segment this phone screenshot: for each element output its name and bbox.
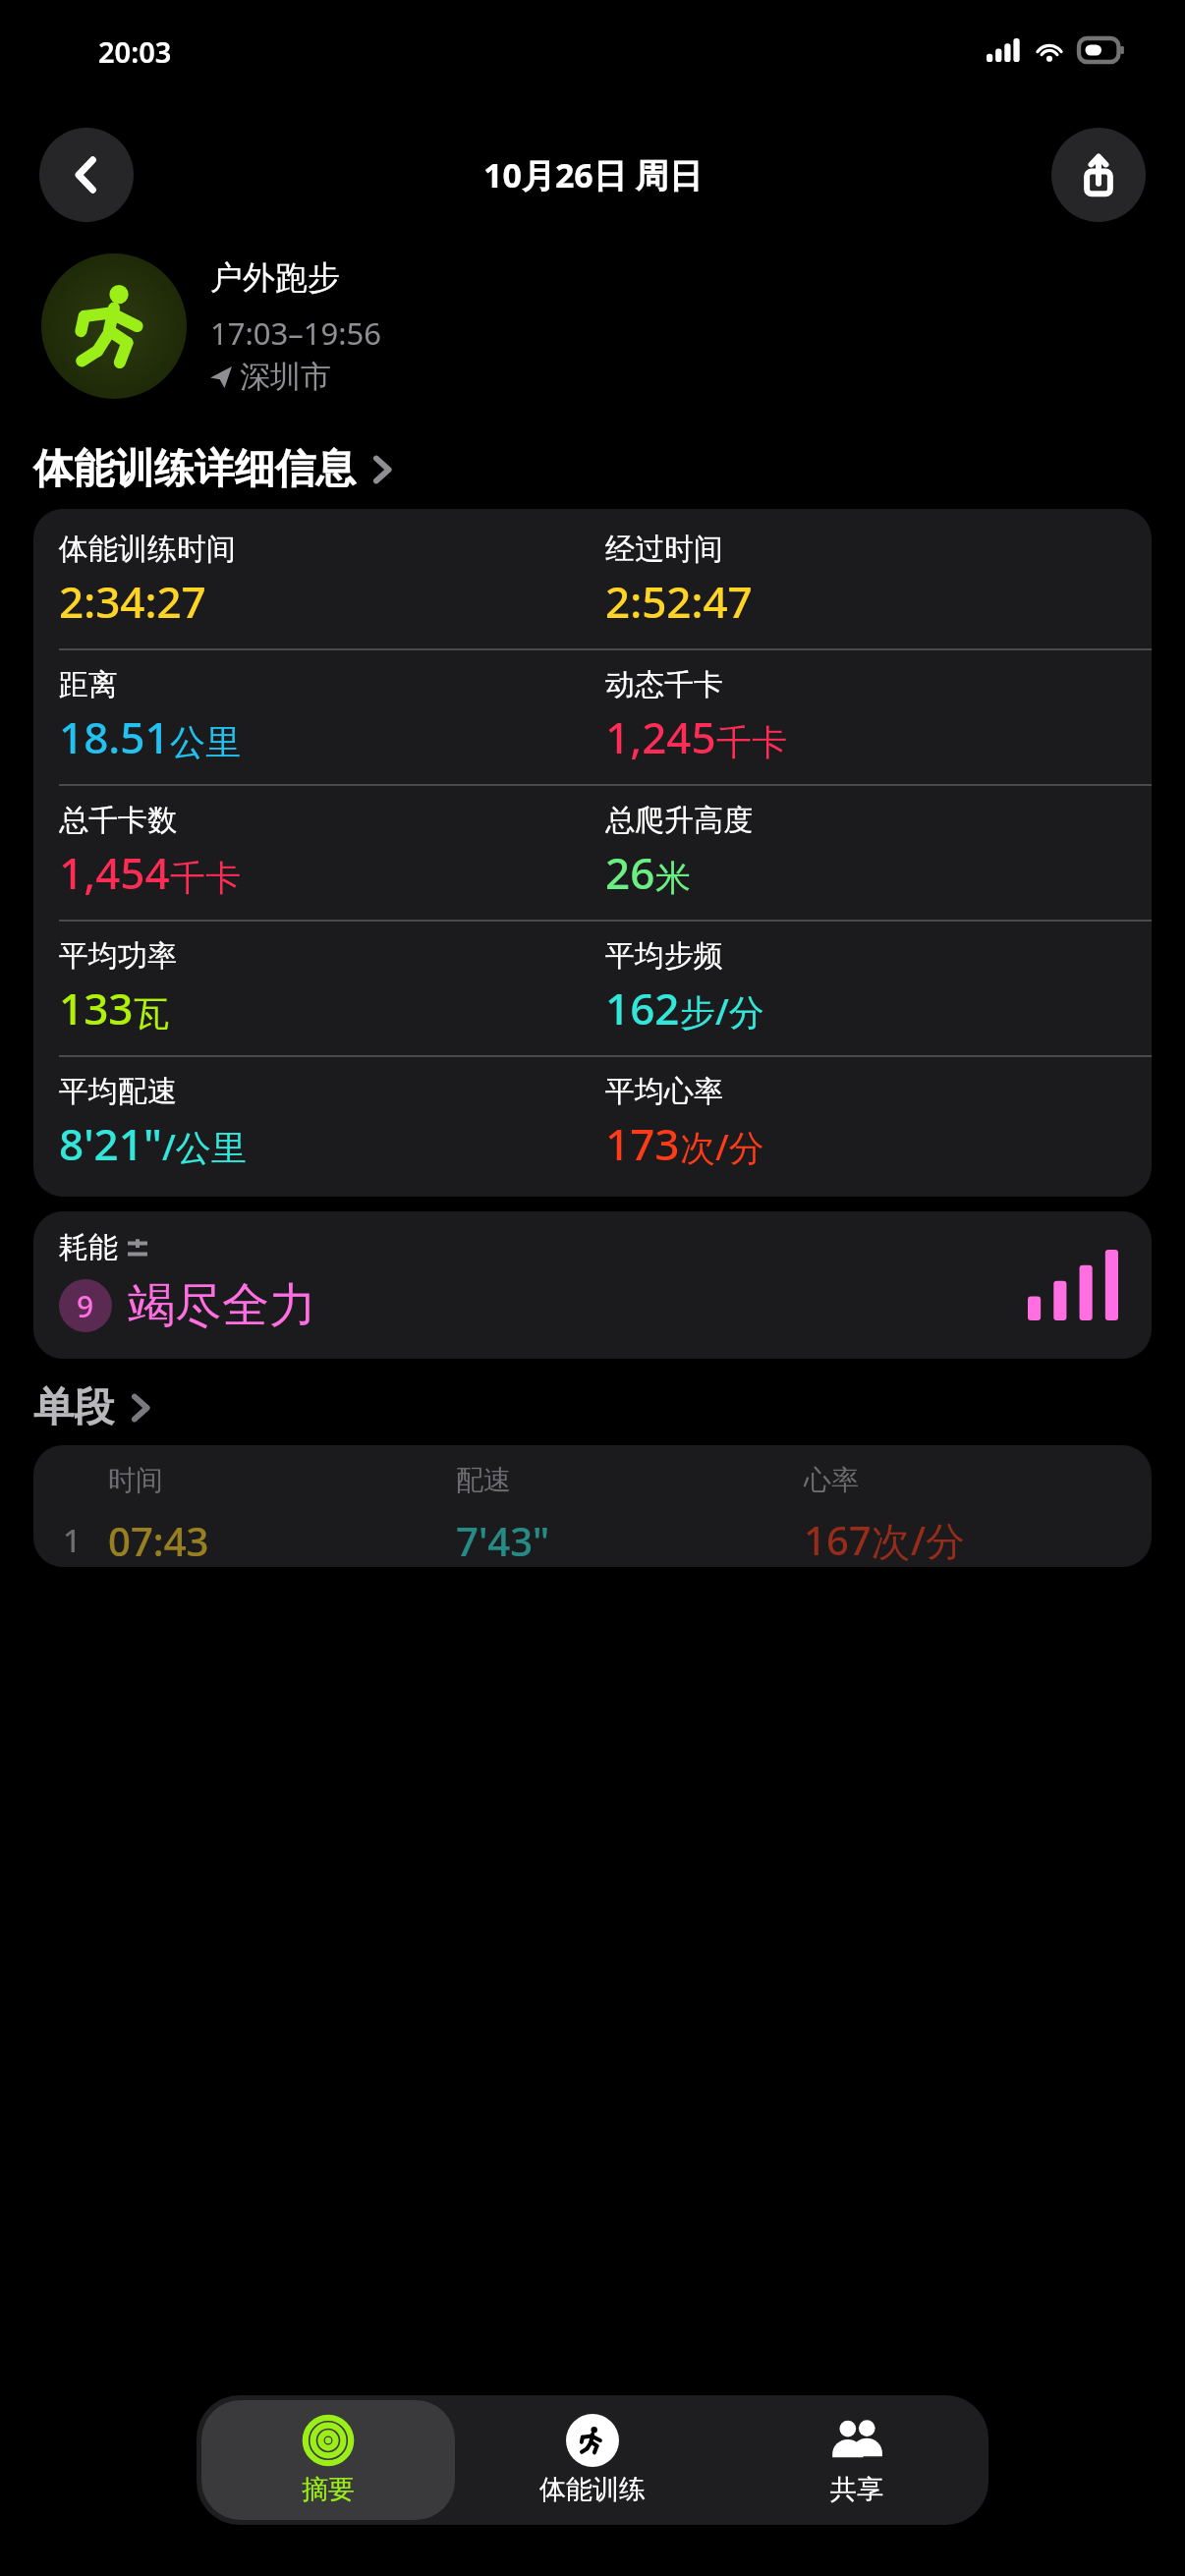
button[interactable]: Share bbox=[1051, 128, 1146, 222]
staticText: 17:03–19:56 bbox=[210, 312, 381, 354]
button[interactable]: Back bbox=[39, 128, 134, 222]
button[interactable]: 摘要 bbox=[201, 2400, 455, 2520]
staticText: 距离 bbox=[59, 666, 118, 703]
staticText: 20:03 bbox=[98, 32, 172, 71]
button[interactable]: 共享 bbox=[729, 2400, 984, 2520]
staticText: 1,454 bbox=[59, 843, 170, 902]
staticText: 平均步频 bbox=[605, 937, 723, 975]
staticText: 总千卡数 bbox=[59, 802, 177, 839]
staticText: 公里 bbox=[170, 720, 241, 764]
staticText: 平均心率 bbox=[605, 1073, 723, 1110]
button[interactable]: 体能训练时间 bbox=[33, 509, 1152, 1197]
staticText: /公里 bbox=[162, 1123, 247, 1171]
staticText: 平均配速 bbox=[59, 1073, 177, 1110]
staticText: 步/分 bbox=[680, 987, 764, 1036]
staticText: 千卡 bbox=[170, 856, 241, 900]
staticText: 瓦 bbox=[134, 991, 169, 1036]
staticText: 1 bbox=[63, 1519, 108, 1562]
button[interactable]: 体能训练 bbox=[465, 2400, 719, 2520]
button[interactable]: 耗能 bbox=[33, 1211, 1152, 1359]
staticText: 133 bbox=[59, 979, 134, 1037]
staticText: 体能训练详细信息 bbox=[33, 444, 356, 495]
staticText: 共享 bbox=[830, 2473, 883, 2506]
button[interactable]: 单段 bbox=[33, 1382, 1185, 1433]
staticText: 时间 bbox=[108, 1463, 456, 1497]
staticText: 耗能 bbox=[59, 1229, 118, 1266]
staticText: 深圳市 bbox=[240, 358, 331, 396]
staticText: 经过时间 bbox=[605, 531, 723, 568]
staticText: 167次/分 bbox=[804, 1513, 1152, 1567]
staticText: 18.51 bbox=[59, 707, 170, 766]
staticText: 动态千卡 bbox=[605, 666, 723, 703]
staticText: 竭尽全力 bbox=[128, 1276, 316, 1335]
staticText: 配速 bbox=[456, 1463, 804, 1497]
staticText: 1,245 bbox=[605, 707, 716, 766]
staticText: 摘要 bbox=[302, 2473, 355, 2506]
staticText: 米 bbox=[655, 856, 691, 900]
staticText: 07:43 bbox=[108, 1514, 456, 1567]
staticText: 单段 bbox=[33, 1382, 114, 1433]
staticText: 心率 bbox=[804, 1463, 1152, 1497]
staticText: 26 bbox=[605, 843, 655, 902]
staticText: 173 bbox=[605, 1114, 680, 1173]
staticText: 体能训练 bbox=[539, 2473, 646, 2506]
button[interactable]: 时间 bbox=[33, 1445, 1152, 1567]
staticText: 10月26日 周日 bbox=[483, 152, 703, 197]
staticText: 7'43" bbox=[456, 1514, 804, 1567]
staticText: 次/分 bbox=[680, 1123, 764, 1171]
staticText: 9 bbox=[77, 1286, 94, 1326]
staticText: 2:34:27 bbox=[59, 572, 206, 631]
button[interactable]: 体能训练详细信息 bbox=[33, 444, 1185, 495]
staticText: 平均功率 bbox=[59, 937, 177, 975]
staticText: 8'21" bbox=[59, 1114, 162, 1173]
staticText: 162 bbox=[605, 979, 680, 1037]
staticText: 2:52:47 bbox=[605, 572, 753, 631]
staticText: 总爬升高度 bbox=[605, 802, 753, 839]
staticText: 体能训练时间 bbox=[59, 531, 236, 568]
staticText: 户外跑步 bbox=[210, 257, 340, 299]
staticText: 千卡 bbox=[716, 720, 787, 764]
